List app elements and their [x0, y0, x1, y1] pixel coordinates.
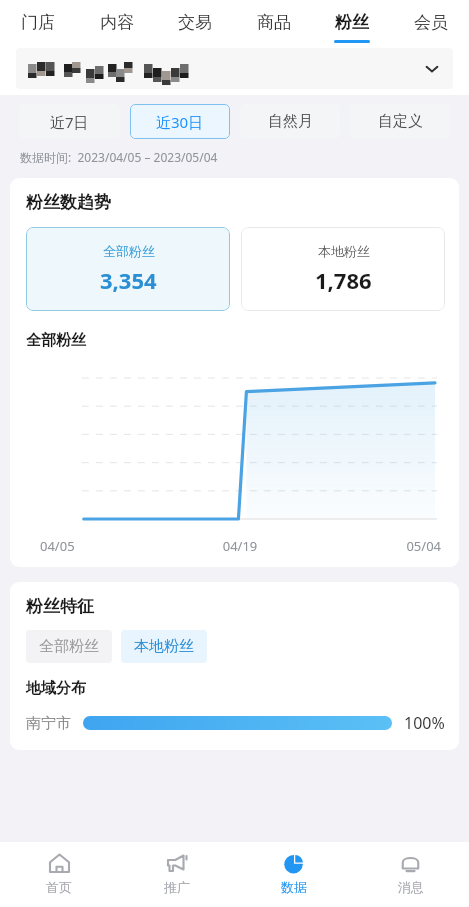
button[interactable]: 推广 — [118, 842, 235, 907]
staticText: 推广 — [164, 879, 190, 895]
staticText: 会员 — [414, 12, 448, 33]
button[interactable]: 数据 — [235, 842, 352, 907]
button[interactable]: Expand — [16, 48, 453, 89]
staticText: 内容 — [100, 12, 134, 33]
button[interactable]: 粉丝 — [328, 0, 376, 48]
button[interactable]: 近30日 — [130, 104, 230, 139]
staticText: 本地粉丝 — [318, 243, 370, 259]
staticText: 自定义 — [378, 112, 423, 131]
staticText: 近7日 — [50, 112, 89, 132]
other: 消息 — [398, 851, 423, 876]
button[interactable]: 首页 — [0, 842, 118, 907]
button[interactable]: 自定义 — [350, 104, 450, 139]
staticText: 地域分布 — [26, 679, 86, 698]
staticText: 04/19 — [173, 537, 307, 555]
button[interactable]: 内容 — [93, 0, 141, 48]
staticText: 1,786 — [315, 265, 372, 295]
staticText: 数据时间: 2023/04/05 – 2023/05/04 — [20, 149, 218, 165]
other: 推广 — [164, 851, 189, 876]
staticText: 商品 — [257, 12, 291, 33]
staticText: 全部粉丝 — [26, 331, 86, 350]
button[interactable]: 交易 — [171, 0, 219, 48]
staticText: 全部粉丝 — [103, 243, 155, 259]
staticText: 自然月 — [268, 112, 313, 131]
button[interactable]: 商品 — [250, 0, 298, 48]
button[interactable]: 消息 — [352, 842, 469, 907]
staticText: 首页 — [46, 879, 72, 895]
staticText: 本地粉丝 — [134, 637, 194, 656]
button[interactable]: 自然月 — [240, 104, 340, 139]
staticText: 粉丝数趋势 — [26, 192, 111, 213]
other: 数据 — [281, 851, 306, 876]
button[interactable]: 近7日 — [19, 104, 120, 139]
button[interactable]: 本地粉丝 — [121, 630, 207, 663]
button[interactable]: 全部粉丝 — [26, 630, 112, 663]
staticText: 粉丝 — [335, 12, 369, 33]
staticText: 南宁市 — [26, 714, 71, 733]
button[interactable]: 本地粉丝 — [241, 227, 445, 311]
staticText: 消息 — [398, 879, 424, 895]
staticText: 05/04 — [307, 537, 441, 555]
staticText: 3,354 — [100, 265, 157, 295]
staticText: 100% — [404, 712, 445, 734]
button[interactable]: 全部粉丝 — [26, 227, 230, 311]
button[interactable]: 会员 — [407, 0, 455, 48]
other: Expand — [423, 60, 441, 78]
other: 首页 — [47, 851, 72, 876]
staticText: 04/05 — [40, 537, 173, 555]
staticText: 近30日 — [156, 112, 204, 132]
staticText: 粉丝特征 — [26, 596, 94, 617]
staticText: 数据 — [281, 879, 307, 895]
staticText: 全部粉丝 — [39, 637, 99, 656]
staticText: 交易 — [178, 12, 212, 33]
staticText: 门店 — [21, 12, 55, 33]
button[interactable]: 门店 — [14, 0, 62, 48]
